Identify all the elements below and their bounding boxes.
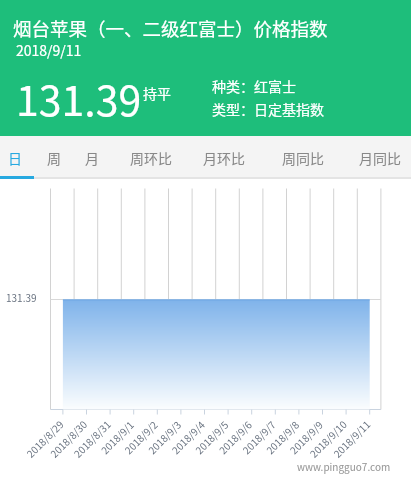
button[interactable]: 周同比 — [252, 136, 354, 179]
staticText: 周 — [47, 148, 61, 168]
button[interactable]: 周环比 — [106, 136, 196, 179]
staticText: 月 — [85, 148, 99, 168]
button[interactable]: 月 — [77, 136, 106, 179]
staticText: 月同比 — [359, 148, 401, 168]
button[interactable]: 月环比 — [196, 136, 252, 179]
staticText: 日 — [8, 148, 22, 168]
staticText: 月环比 — [203, 148, 245, 168]
button[interactable]: 周 — [30, 136, 77, 179]
staticText: 131.39 — [16, 68, 142, 127]
staticText: 2018/9/11 — [16, 40, 82, 60]
staticText: 类型：日定基指数 — [212, 99, 324, 119]
staticText: 烟台苹果（一、二级红富士）价格指数 — [13, 15, 328, 42]
staticText: 种类：红富士 — [212, 76, 296, 96]
staticText: 周环比 — [130, 148, 172, 168]
button[interactable]: 月同比 — [354, 136, 405, 179]
staticText: 持平 — [143, 83, 171, 103]
button[interactable]: 日 — [0, 136, 30, 179]
staticText: www.pingguo7.com — [297, 459, 391, 473]
staticText: 周同比 — [282, 148, 324, 168]
